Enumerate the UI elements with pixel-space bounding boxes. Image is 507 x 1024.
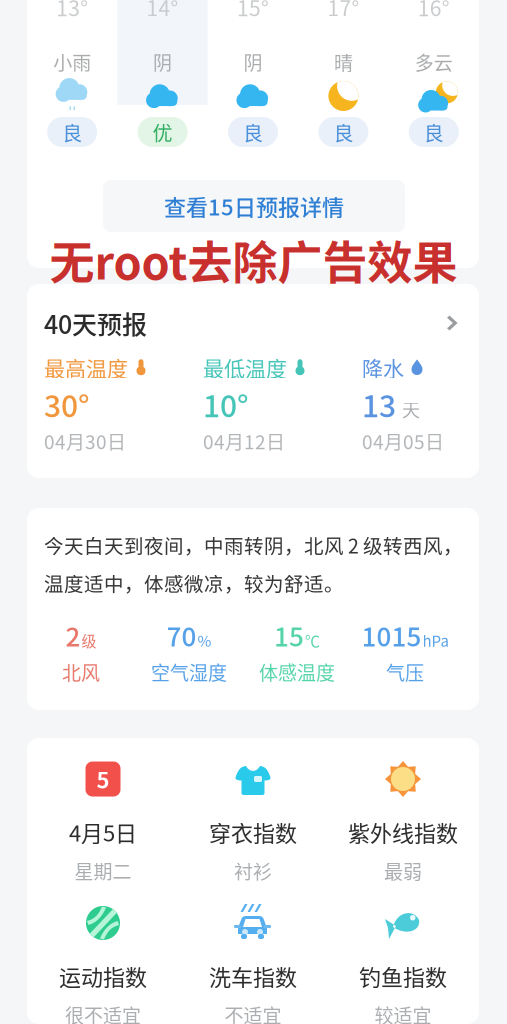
staticText: 阴 — [153, 48, 172, 76]
button[interactable]: 40天预报 — [44, 306, 462, 340]
staticText: 晴 — [334, 48, 353, 76]
staticText: 良 — [424, 117, 444, 146]
staticText: 10° — [203, 382, 249, 426]
staticText: 良 — [333, 117, 353, 146]
staticText: hPa — [422, 629, 448, 651]
staticText: 最低温度 — [203, 352, 287, 382]
staticText: 15 — [274, 616, 304, 654]
staticText: 钓鱼指数 — [359, 960, 447, 992]
staticText: 穿衣指数 — [209, 816, 297, 848]
staticText: 04月05日 — [362, 427, 444, 455]
staticText: 04月30日 — [44, 427, 126, 455]
staticText: 最弱 — [384, 857, 422, 884]
staticText: 今天白天到夜间，中雨转阴，北风 2 级转西风， — [44, 531, 463, 559]
staticText: 04月12日 — [203, 427, 285, 455]
staticText: 较适宜 — [374, 1001, 431, 1024]
staticText: 体感温度 — [259, 658, 335, 686]
button[interactable]: 5 — [28, 760, 178, 870]
staticText: 2 — [65, 616, 80, 654]
staticText: 最高温度 — [44, 352, 128, 382]
staticText: % — [197, 629, 211, 651]
staticText: 良 — [243, 117, 263, 146]
staticText: 温度适中，体感微凉，较为舒适。 — [44, 569, 344, 597]
staticText: 阴 — [243, 48, 262, 76]
staticText: 天 — [402, 396, 420, 422]
staticText: 降水 — [362, 352, 404, 382]
staticText: 洗车指数 — [209, 960, 297, 992]
staticText: 13° — [56, 0, 88, 22]
staticText: 多云 — [415, 48, 453, 76]
staticText: 查看15日预报详情 — [164, 190, 344, 222]
button[interactable]: 紫外线指数 — [328, 760, 478, 870]
staticText: 不适宜 — [224, 1001, 281, 1024]
staticText: 15° — [237, 0, 269, 22]
staticText: 小雨 — [53, 48, 91, 76]
staticText: 运动指数 — [59, 960, 147, 992]
staticText: 16° — [418, 0, 450, 22]
staticText: 星期二 — [74, 857, 131, 884]
staticText: 30° — [44, 382, 90, 426]
staticText: 1015 — [361, 616, 421, 654]
button[interactable]: 穿衣指数 — [178, 760, 328, 870]
staticText: 17° — [327, 0, 359, 22]
staticText: 5 — [96, 763, 109, 795]
staticText: 很不适宜 — [65, 1001, 141, 1024]
button[interactable]: 洗车指数 — [178, 904, 328, 1014]
staticText: 无root去除广告效果 — [49, 227, 457, 293]
staticText: 北风 — [62, 658, 100, 686]
staticText: 气压 — [386, 658, 424, 686]
staticText: 紫外线指数 — [348, 816, 458, 848]
staticText: 良 — [62, 117, 82, 146]
staticText: 13 — [362, 382, 396, 426]
button[interactable]: 运动指数 — [28, 904, 178, 1014]
button[interactable]: 钓鱼指数 — [328, 904, 478, 1014]
staticText: 级 — [81, 629, 96, 651]
staticText: 14° — [147, 0, 179, 22]
button[interactable]: 查看15日预报详情 — [103, 180, 405, 232]
staticText: 优 — [153, 117, 173, 146]
staticText: 40天预报 — [44, 305, 147, 341]
staticText: 空气湿度 — [151, 658, 227, 686]
staticText: 4月5日 — [69, 816, 137, 848]
staticText: ℃ — [305, 629, 320, 651]
staticText: 70 — [166, 616, 196, 654]
staticText: 衬衫 — [234, 857, 272, 884]
